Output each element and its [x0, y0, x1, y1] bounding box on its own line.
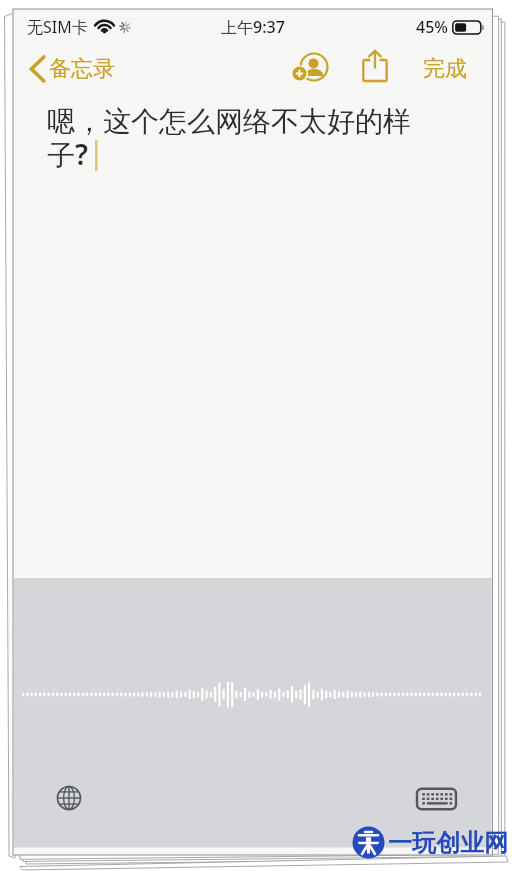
- staticText: 完成: [423, 55, 467, 83]
- staticText: 上午9:37: [221, 16, 285, 38]
- button[interactable]: 完成: [414, 46, 476, 92]
- button[interactable]: 共享: [353, 45, 397, 89]
- button[interactable]: 键盘: [411, 773, 462, 824]
- staticText: 一玩创业网: [388, 828, 508, 858]
- staticText: 嗯，这个怎么网络不太好的样子?: [47, 104, 413, 173]
- staticText: 无SIM卡: [27, 16, 88, 38]
- staticText: 备忘录: [49, 55, 115, 83]
- button[interactable]: 备忘录: [29, 46, 115, 92]
- button[interactable]: 切换语言: [46, 775, 91, 820]
- button[interactable]: 添加人员: [286, 46, 330, 90]
- staticText: 45%: [416, 16, 448, 38]
